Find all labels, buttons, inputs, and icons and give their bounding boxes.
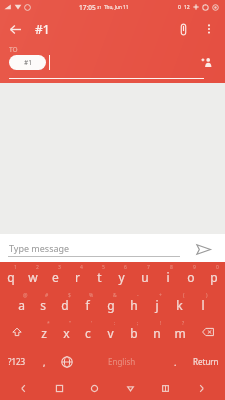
button[interactable]: English	[78, 346, 165, 377]
button[interactable]: 1	[0, 262, 22, 290]
staticText: j	[155, 297, 159, 313]
staticText: .	[174, 356, 177, 368]
staticText: a	[18, 297, 25, 313]
button[interactable]: Attach	[170, 16, 196, 42]
staticText: !	[160, 320, 162, 327]
button[interactable]: Hide keyboard	[119, 377, 142, 400]
button[interactable]: 2	[22, 262, 44, 290]
button[interactable]: Return	[186, 346, 225, 377]
button[interactable]: :	[99, 318, 122, 346]
staticText: #1	[35, 21, 50, 37]
staticText: @	[23, 292, 28, 299]
staticText: English	[108, 356, 136, 367]
button[interactable]: 8	[156, 262, 179, 290]
button[interactable]: %	[76, 290, 99, 318]
staticText: y	[118, 269, 125, 285]
staticText: h	[130, 297, 138, 313]
button[interactable]: )	[191, 290, 214, 318]
staticText: *	[47, 320, 50, 327]
staticText: (	[183, 292, 185, 299]
staticText: 31	[97, 5, 102, 10]
staticText: f	[85, 297, 90, 313]
staticText: g	[107, 297, 115, 313]
button[interactable]: *	[33, 318, 55, 346]
button[interactable]: -	[122, 290, 145, 318]
staticText: v	[107, 325, 114, 341]
staticText: 8	[170, 264, 173, 271]
staticText: 12	[184, 4, 190, 11]
staticText: o	[187, 269, 195, 285]
staticText: #	[45, 292, 49, 299]
staticText: p	[210, 269, 218, 285]
staticText: :	[114, 320, 116, 327]
button[interactable]: &	[99, 290, 122, 318]
button[interactable]: More options	[196, 16, 222, 42]
staticText: %	[89, 292, 94, 299]
button[interactable]: ,	[34, 346, 55, 377]
button[interactable]: Shift	[0, 318, 33, 346]
button[interactable]: 9	[179, 262, 202, 290]
staticText: $	[68, 292, 71, 299]
staticText: ,	[43, 356, 46, 368]
button[interactable]: +	[145, 290, 168, 318]
button[interactable]: 3	[44, 262, 66, 290]
button[interactable]: '	[77, 318, 99, 346]
staticText: 1	[14, 264, 17, 271]
staticText: n	[153, 325, 161, 341]
button[interactable]: 0	[202, 262, 225, 290]
button[interactable]: 7	[133, 262, 156, 290]
staticText: ;	[137, 320, 139, 327]
button[interactable]: (	[168, 290, 191, 318]
staticText: i	[166, 269, 170, 285]
button[interactable]: Send	[193, 239, 213, 259]
staticText: x	[63, 325, 70, 341]
button[interactable]: ;	[122, 318, 145, 346]
button[interactable]: @	[10, 290, 32, 318]
button[interactable]: Back	[0, 14, 30, 44]
staticText: ?123	[8, 356, 26, 367]
staticText: 2	[36, 264, 39, 271]
staticText: )	[206, 292, 208, 299]
button[interactable]: Split screen	[154, 377, 177, 400]
button[interactable]: Recents	[48, 377, 71, 400]
staticText: l	[201, 297, 205, 313]
button[interactable]: #	[32, 290, 54, 318]
button[interactable]: 5	[88, 262, 110, 290]
staticText: b	[130, 325, 138, 341]
button[interactable]: 6	[110, 262, 133, 290]
button[interactable]: Backspace	[191, 318, 225, 346]
button[interactable]: Change language	[55, 346, 78, 377]
staticText: z	[41, 325, 47, 341]
button[interactable]: Home	[83, 377, 106, 400]
staticText: t	[97, 269, 102, 285]
staticText: 4	[80, 264, 83, 271]
staticText: 7	[147, 264, 150, 271]
staticText: #1	[24, 58, 32, 67]
button[interactable]: Back	[12, 377, 35, 400]
staticText: -	[137, 292, 139, 299]
staticText: s	[40, 297, 46, 313]
staticText: '	[91, 320, 93, 327]
button[interactable]: !	[145, 318, 168, 346]
staticText: 0	[216, 264, 219, 271]
button[interactable]: ?123	[0, 346, 34, 377]
button[interactable]: Forward	[190, 377, 213, 400]
button[interactable]: #1	[9, 55, 46, 70]
staticText: k	[176, 297, 183, 313]
staticText: w	[28, 269, 38, 285]
staticText: c	[85, 325, 91, 341]
button[interactable]: ?	[168, 318, 191, 346]
staticText: Return	[193, 356, 219, 367]
button[interactable]: .	[165, 346, 186, 377]
staticText: 0	[178, 4, 181, 11]
staticText: 6	[124, 264, 127, 271]
staticText: q	[7, 269, 15, 285]
button[interactable]: "	[55, 318, 77, 346]
button[interactable]: $	[54, 290, 76, 318]
staticText: Type message	[9, 242, 70, 254]
staticText: 5	[102, 264, 105, 271]
staticText: "	[69, 320, 72, 327]
staticText: &	[113, 292, 117, 299]
button[interactable]: 4	[66, 262, 88, 290]
button[interactable]: Add contact	[198, 53, 216, 71]
